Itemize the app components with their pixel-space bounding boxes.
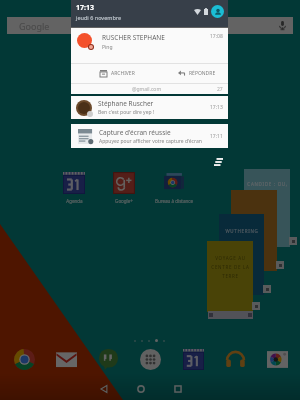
staticText: Agenda xyxy=(66,198,83,204)
staticText: 27 xyxy=(217,86,223,93)
staticText: 17:08 xyxy=(210,33,223,40)
staticText: RÉPONDRE xyxy=(189,70,216,77)
button[interactable]: Agenda xyxy=(178,344,208,374)
button[interactable]: Google+ xyxy=(99,172,149,204)
button[interactable]: Back xyxy=(92,377,116,400)
staticText: Bureau à distance xyxy=(155,198,193,204)
button[interactable]: RÉPONDRE xyxy=(149,64,228,83)
button[interactable]: User profile xyxy=(211,5,224,18)
button[interactable]: Apps xyxy=(135,344,165,374)
button[interactable]: Clear all notifications xyxy=(212,155,225,168)
button[interactable]: Camera xyxy=(262,344,292,374)
button[interactable]: Play Music xyxy=(220,344,250,374)
staticText: Capture d'écran réussie xyxy=(99,128,171,137)
staticText: Appuyez pour afficher votre capture d'éc… xyxy=(99,138,202,145)
staticText: WUTHERING xyxy=(225,228,259,234)
button[interactable]: 17:13 xyxy=(71,0,228,27)
button[interactable]: Capture d'écran réussie xyxy=(71,124,228,148)
button[interactable]: Home xyxy=(129,377,153,400)
button[interactable]: Chrome xyxy=(9,344,39,374)
staticText: ARCHIVER xyxy=(111,70,135,77)
staticText: Ping xyxy=(102,44,113,51)
button[interactable]: Hangouts xyxy=(93,344,123,374)
button[interactable]: CANDIDE : OU, xyxy=(205,166,300,322)
button[interactable]: Bureau à distance xyxy=(149,172,199,204)
staticText: 17:11 xyxy=(210,133,223,140)
staticText: CANDIDE : OU, xyxy=(247,181,288,187)
button[interactable]: Stéphane Ruscher xyxy=(71,96,228,119)
staticText: 17:13 xyxy=(210,104,223,111)
button[interactable]: Agenda xyxy=(49,172,99,204)
staticText: 17:13 xyxy=(76,3,94,13)
staticText: VOYAGE AU CENTRE DE LA TERRE xyxy=(211,255,250,279)
button[interactable]: Gmail xyxy=(51,344,81,374)
button[interactable]: ARCHIVER xyxy=(71,64,149,83)
staticText: @gmail.com xyxy=(132,86,162,93)
staticText: Stéphane Ruscher xyxy=(98,99,154,108)
staticText: Ben c'est pour dire yep ! xyxy=(98,109,155,116)
staticText: RUSCHER STEPHANE xyxy=(102,33,165,42)
staticText: Google+ xyxy=(115,198,133,204)
button[interactable]: RUSCHER STEPHANE xyxy=(71,28,228,94)
other: Voice search xyxy=(279,21,286,30)
button[interactable]: Google xyxy=(7,17,293,34)
staticText: jeudi 6 novembre xyxy=(76,14,122,21)
staticText: Google xyxy=(19,20,50,32)
button[interactable]: Recent apps xyxy=(166,377,190,400)
